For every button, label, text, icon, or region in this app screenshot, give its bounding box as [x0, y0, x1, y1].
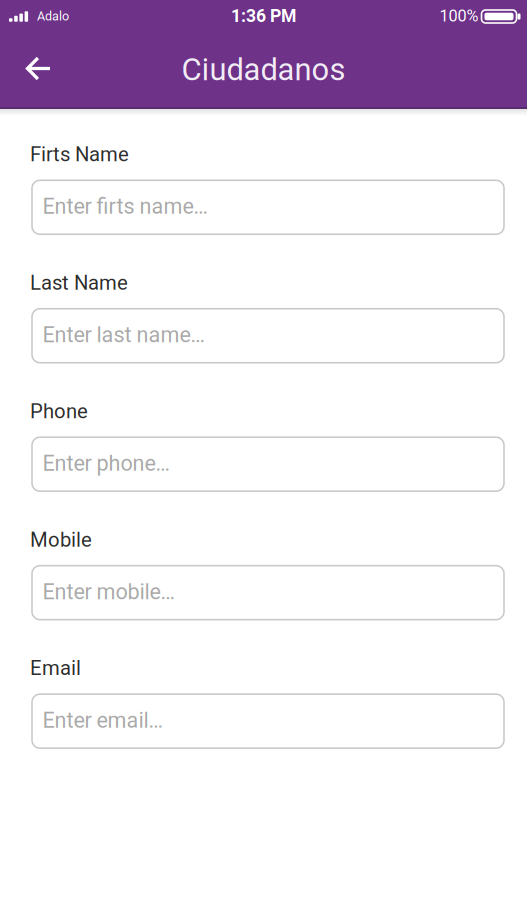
button[interactable]: Enter last name…: [32, 309, 504, 363]
staticText: Mobile: [30, 525, 92, 555]
button[interactable]: Enter mobile…: [32, 566, 504, 620]
staticText: 100%: [439, 5, 478, 28]
staticText: Enter email…: [42, 705, 162, 737]
staticText: Phone: [30, 397, 88, 427]
staticText: Email: [30, 654, 81, 684]
button[interactable]: Enter phone…: [32, 437, 504, 491]
staticText: Last Name: [30, 268, 128, 298]
button[interactable]: Enter firts name…: [32, 180, 504, 234]
staticText: Adalo: [37, 7, 69, 26]
staticText: Enter last name…: [42, 320, 204, 351]
staticText: Enter phone…: [42, 448, 169, 480]
button[interactable]: Enter email…: [32, 694, 504, 748]
staticText: Enter firts name…: [42, 191, 207, 223]
staticText: Ciudadanos: [181, 48, 345, 93]
button[interactable]: Back: [0, 46, 62, 91]
staticText: Firts Name: [30, 140, 129, 170]
staticText: Enter mobile…: [42, 577, 174, 608]
staticText: 1:36 PM: [231, 4, 296, 29]
